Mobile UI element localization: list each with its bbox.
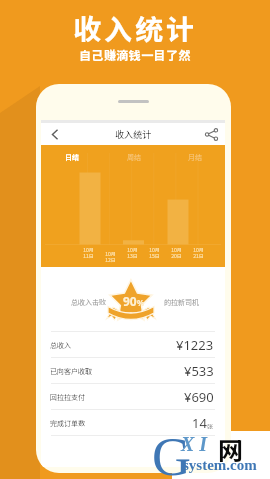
button[interactable]: 已向客户收取 bbox=[41, 357, 225, 383]
button[interactable]: 周结 bbox=[103, 145, 164, 168]
staticText: 收入统计 bbox=[0, 8, 270, 49]
staticText: 月结 bbox=[188, 152, 202, 162]
staticText: 10月 15日 bbox=[149, 246, 160, 259]
staticText: 90 bbox=[123, 293, 137, 309]
staticText: 周结 bbox=[127, 152, 141, 162]
button[interactable]: 月结 bbox=[164, 145, 225, 168]
staticText: 收入统计 bbox=[68, 128, 198, 141]
staticText: 14 bbox=[192, 414, 207, 432]
staticText: 日结 bbox=[65, 152, 79, 162]
staticText: % bbox=[137, 297, 145, 308]
staticText: ¥690 bbox=[184, 388, 214, 406]
staticText: 网 bbox=[218, 431, 244, 467]
staticText: 的拉新司机 bbox=[164, 297, 199, 307]
button[interactable]: Share bbox=[198, 123, 225, 145]
staticText: system.com bbox=[183, 457, 257, 474]
staticText: X I bbox=[181, 433, 208, 455]
staticText: 张 bbox=[207, 422, 214, 431]
staticText: 10月 13日 bbox=[127, 246, 138, 259]
button[interactable]: 总收入 bbox=[41, 331, 225, 357]
staticText: 完成订单数 bbox=[50, 418, 85, 428]
staticText: G bbox=[152, 427, 191, 479]
staticText: 10月 12日 bbox=[105, 250, 116, 263]
staticText: 总收入 bbox=[50, 340, 71, 350]
staticText: ¥533 bbox=[184, 362, 214, 380]
button[interactable]: 日结 bbox=[41, 145, 103, 168]
staticText: 总收入击败 bbox=[71, 297, 106, 307]
staticText: 回拉拉支付 bbox=[50, 392, 85, 402]
button[interactable]: 完成订单数 bbox=[41, 409, 225, 435]
staticText: 10月 21日 bbox=[193, 246, 204, 259]
staticText: 已向客户收取 bbox=[50, 366, 92, 376]
button[interactable]: 回拉拉支付 bbox=[41, 383, 225, 409]
button[interactable]: Back bbox=[41, 123, 68, 145]
staticText: 自己赚滴钱一目了然 bbox=[0, 46, 270, 63]
staticText: 10月 11日 bbox=[83, 246, 94, 259]
staticText: ¥1223 bbox=[176, 336, 214, 354]
staticText: 10月 20日 bbox=[171, 246, 182, 259]
